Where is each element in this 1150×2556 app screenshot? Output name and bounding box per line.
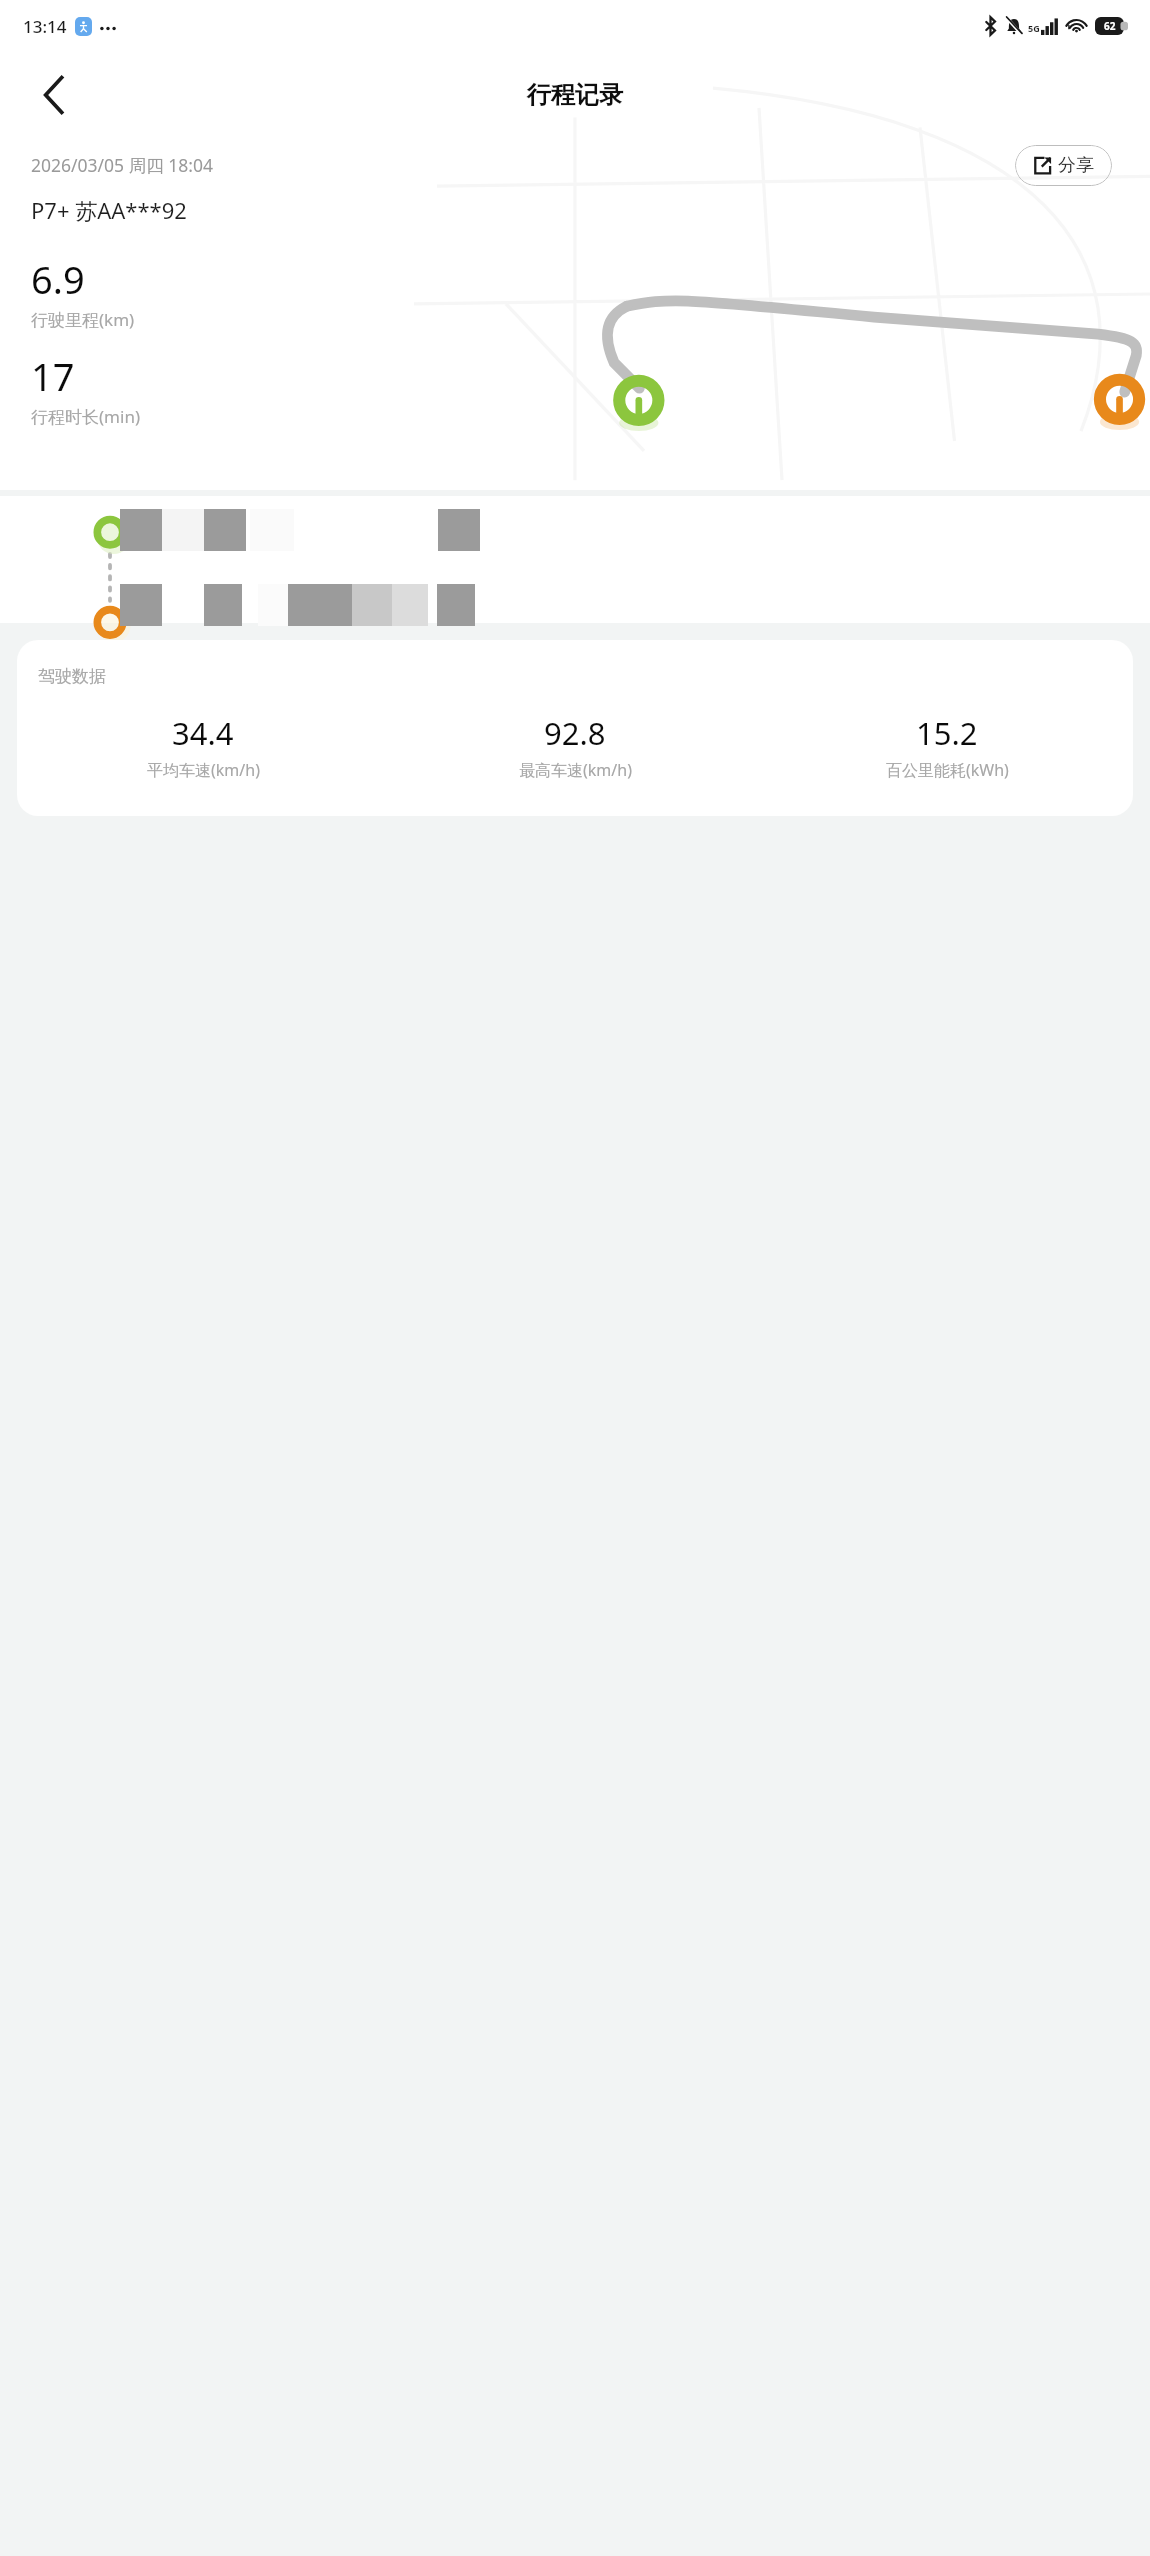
staticText: 15.2	[916, 712, 978, 754]
staticText: 34.4	[172, 712, 234, 754]
staticText: 17	[31, 350, 75, 402]
staticText: 分享	[1058, 154, 1094, 177]
staticText: P7+ 苏AA***92	[31, 195, 187, 225]
staticText: 驾驶数据	[38, 666, 106, 687]
staticText: 13:14	[23, 15, 67, 38]
button[interactable]: Back	[22, 63, 86, 127]
staticText: 百公里能耗(kWh)	[886, 759, 1009, 781]
staticText: 5G	[1028, 22, 1040, 34]
staticText: 2026/03/05 周四 18:04	[31, 153, 213, 177]
button[interactable]: 驾驶数据	[17, 640, 1133, 816]
staticText: 行程记录	[527, 80, 623, 110]
staticText: 行程时长(min)	[31, 405, 140, 428]
staticText: 平均车速(km/h)	[147, 759, 260, 781]
staticText: 行驶里程(km)	[31, 308, 135, 331]
staticText: 6.9	[31, 253, 85, 305]
staticText: 最高车速(km/h)	[519, 759, 632, 781]
staticText: 62	[1104, 19, 1116, 33]
button[interactable]: 分享	[1015, 145, 1112, 186]
staticText: 92.8	[544, 712, 606, 754]
